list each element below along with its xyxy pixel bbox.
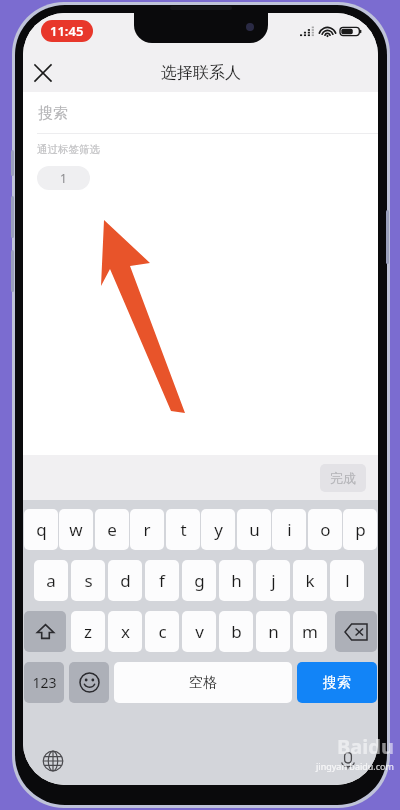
button[interactable]: y (201, 509, 235, 550)
button[interactable]: 123 (24, 662, 64, 703)
staticText: u (249, 518, 260, 541)
staticText: t (180, 518, 187, 541)
staticText: p (355, 518, 366, 541)
button[interactable]: g (182, 560, 216, 601)
staticText: 搜索 (38, 104, 68, 123)
staticText: l (345, 569, 350, 592)
button[interactable]: n (256, 611, 290, 652)
staticText: s (84, 569, 93, 592)
staticText: o (320, 518, 331, 541)
staticText: b (231, 620, 242, 643)
staticText: g (194, 569, 205, 592)
button[interactable]: 1 (37, 166, 90, 190)
button[interactable]: f (145, 560, 179, 601)
button[interactable]: 完成 (320, 464, 366, 492)
staticText: i (287, 518, 292, 541)
button[interactable]: m (293, 611, 327, 652)
staticText: jingyan.baidu.com (316, 760, 394, 772)
staticText: f (159, 569, 165, 592)
staticText: e (107, 518, 117, 541)
button[interactable]: s (71, 560, 105, 601)
staticText: y (214, 518, 223, 541)
button[interactable]: a (34, 560, 68, 601)
staticText: d (120, 569, 131, 592)
button[interactable]: q (24, 509, 58, 550)
button[interactable]: b (219, 611, 253, 652)
staticText: n (268, 620, 279, 643)
staticText: 1 (60, 170, 67, 186)
button[interactable]: Backspace (335, 611, 377, 652)
staticText: k (305, 569, 315, 592)
staticText: 11:45 (50, 22, 84, 40)
staticText: c (158, 620, 167, 643)
staticText: 搜索 (323, 674, 351, 692)
button[interactable]: d (108, 560, 142, 601)
staticText: Baidu (337, 733, 394, 760)
staticText: a (46, 569, 56, 592)
button[interactable]: t (166, 509, 200, 550)
button[interactable]: 空格 (114, 662, 292, 703)
button[interactable]: u (237, 509, 271, 550)
button[interactable]: Emoji (69, 662, 109, 703)
button[interactable]: 搜索 (297, 662, 377, 703)
staticText: 空格 (189, 674, 217, 692)
staticText: 123 (32, 673, 57, 692)
button[interactable]: o (308, 509, 342, 550)
staticText: q (36, 518, 47, 541)
button[interactable]: r (130, 509, 164, 550)
button[interactable]: i (272, 509, 306, 550)
staticText: w (69, 518, 83, 541)
button[interactable]: w (59, 509, 93, 550)
button[interactable]: z (71, 611, 105, 652)
button[interactable]: x (108, 611, 142, 652)
staticText: r (143, 518, 151, 541)
staticText: 选择联系人 (161, 63, 241, 83)
button[interactable]: v (182, 611, 216, 652)
button[interactable]: h (219, 560, 253, 601)
button[interactable]: Language (37, 745, 69, 777)
staticText: 完成 (330, 470, 356, 486)
button[interactable]: Dictation (332, 745, 364, 777)
staticText: m (302, 620, 318, 643)
staticText: v (195, 620, 204, 643)
button[interactable]: l (330, 560, 364, 601)
button[interactable]: j (256, 560, 290, 601)
staticText: j (271, 569, 276, 592)
button[interactable]: c (145, 611, 179, 652)
button[interactable]: p (343, 509, 377, 550)
staticText: z (84, 620, 92, 643)
staticText: 通过标签筛选 (37, 143, 100, 156)
staticText: h (231, 569, 242, 592)
staticText: x (121, 620, 130, 643)
button[interactable]: k (293, 560, 327, 601)
button[interactable]: Shift (24, 611, 66, 652)
button[interactable]: e (95, 509, 129, 550)
button[interactable]: Close (23, 53, 63, 92)
